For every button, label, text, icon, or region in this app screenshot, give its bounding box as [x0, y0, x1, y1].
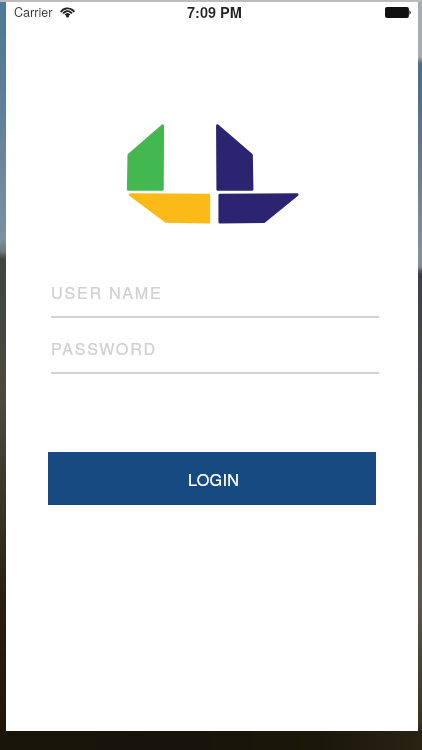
button[interactable]: PASSWORD	[51, 325, 379, 374]
staticText: Carrier	[14, 3, 53, 21]
button[interactable]: USER NAME	[51, 269, 379, 318]
staticText: PASSWORD	[51, 336, 157, 359]
staticText: USER NAME	[51, 280, 163, 303]
staticText: LOGIN	[188, 467, 240, 490]
button[interactable]: LOGIN	[48, 452, 376, 505]
staticText: 7:09 PM	[187, 2, 242, 23]
